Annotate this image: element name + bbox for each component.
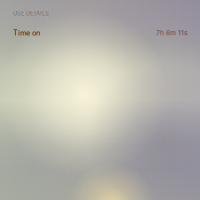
staticText: USE DETAILS bbox=[13, 10, 49, 17]
staticText: 7h 6m 11s bbox=[156, 29, 187, 37]
staticText: Time on bbox=[13, 29, 40, 37]
